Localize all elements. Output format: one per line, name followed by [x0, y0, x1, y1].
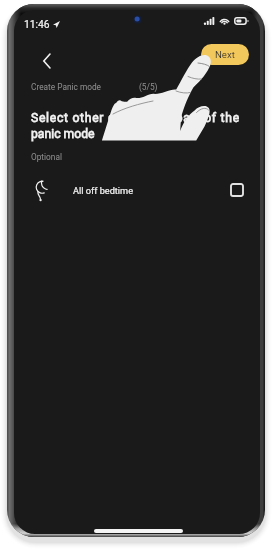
staticText: Create Panic mode [31, 82, 102, 92]
button[interactable]: All off bedtime [14, 175, 260, 205]
button[interactable]: Back [33, 48, 59, 74]
staticText: Next [215, 49, 235, 60]
staticText: Select other devices as part of the [31, 111, 240, 125]
button[interactable]: Next [201, 44, 249, 65]
staticText: 11:46 [24, 18, 50, 30]
staticText: panic mode [31, 127, 95, 141]
staticText: All off bedtime [73, 185, 134, 196]
staticText: (5/5) [139, 82, 158, 92]
staticText: Optional [31, 152, 62, 162]
